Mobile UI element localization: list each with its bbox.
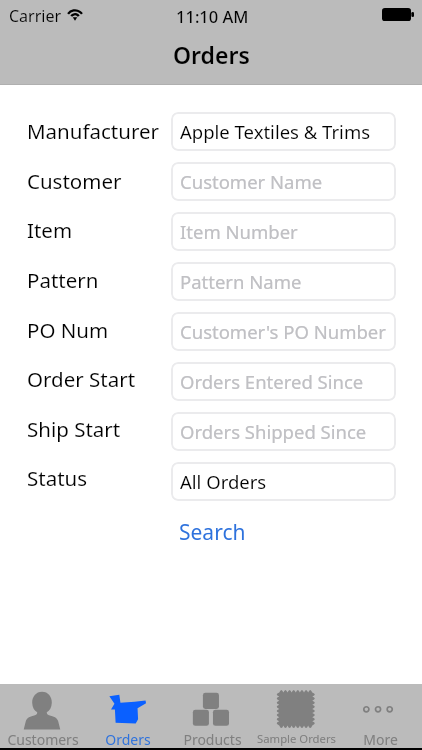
- button[interactable]: Orders Entered Since: [171, 362, 396, 401]
- button[interactable]: All Orders: [171, 462, 396, 501]
- staticText: Customer: [27, 167, 122, 195]
- staticText: Orders: [173, 39, 250, 70]
- staticText: Item: [27, 216, 73, 244]
- staticText: Orders Shipped Since: [180, 419, 367, 444]
- staticText: Customer's PO Number: [180, 319, 386, 344]
- button[interactable]: Apple Textiles & Trims: [171, 112, 396, 151]
- button[interactable]: Sample Orders: [254, 684, 338, 748]
- button[interactable]: Pattern Name: [171, 262, 396, 301]
- staticText: Customer Name: [180, 169, 323, 194]
- button[interactable]: Search: [171, 513, 251, 551]
- staticText: More: [363, 730, 398, 749]
- button[interactable]: Item Number: [171, 212, 396, 251]
- staticText: Pattern: [27, 266, 99, 294]
- button[interactable]: Customers: [0, 684, 85, 748]
- staticText: Orders: [105, 730, 151, 749]
- staticText: Carrier: [9, 5, 62, 27]
- button[interactable]: Orders Shipped Since: [171, 412, 396, 451]
- staticText: Manufacturer: [27, 117, 159, 145]
- staticText: Orders Entered Since: [180, 369, 364, 394]
- button[interactable]: Customer Name: [171, 162, 396, 201]
- staticText: Products: [183, 730, 242, 749]
- staticText: Search: [179, 518, 246, 547]
- button[interactable]: Products: [170, 684, 254, 748]
- button[interactable]: More: [338, 684, 422, 748]
- staticText: PO Num: [27, 316, 109, 344]
- staticText: Sample Orders: [257, 731, 336, 746]
- staticText: Ship Start: [27, 415, 121, 443]
- staticText: Order Start: [27, 365, 136, 393]
- staticText: Pattern Name: [180, 269, 302, 294]
- staticText: Item Number: [180, 219, 298, 244]
- staticText: Status: [27, 464, 88, 492]
- staticText: Customers: [7, 730, 79, 749]
- button[interactable]: Orders: [85, 684, 170, 748]
- staticText: Apple Textiles & Trims: [180, 119, 371, 144]
- staticText: 11:10 AM: [176, 5, 249, 27]
- button[interactable]: Customer's PO Number: [171, 312, 396, 351]
- staticText: All Orders: [180, 469, 267, 494]
